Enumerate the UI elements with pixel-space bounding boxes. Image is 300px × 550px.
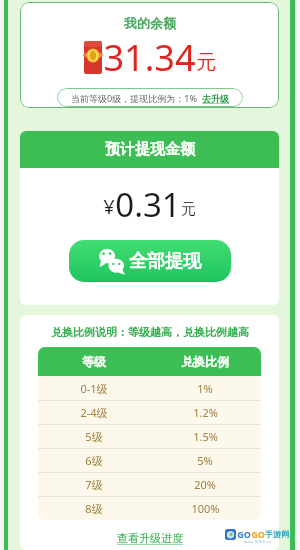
staticText: 去升级 xyxy=(202,93,229,104)
staticText: 2-4级 xyxy=(80,405,108,420)
button[interactable]: 当前等级0级，提现比例为：1% xyxy=(57,88,243,107)
staticText: GO xyxy=(251,528,265,540)
staticText: 手游网 xyxy=(265,529,289,539)
staticText: 0.31 xyxy=(115,182,181,227)
staticText: 8级 xyxy=(85,501,103,516)
staticText: 5级 xyxy=(85,429,103,444)
staticText: 元 xyxy=(196,50,216,75)
button[interactable]: 查看升级进度 xyxy=(113,529,187,547)
staticText: 1% xyxy=(197,381,213,396)
staticText: w w w . 6 0 6 0 . c n xyxy=(244,540,271,544)
staticText: 5% xyxy=(197,453,213,468)
staticText: 6级 xyxy=(85,453,103,468)
staticText: ¥ xyxy=(103,193,115,220)
staticText: 兑换比例 xyxy=(181,354,229,369)
staticText: 7级 xyxy=(85,477,103,492)
staticText: 兑换比例说明：等级越高，兑换比例越高 xyxy=(51,325,249,339)
staticText: 等级 xyxy=(82,354,106,369)
staticText: 我的余额 xyxy=(124,15,176,31)
staticText: 全部提现 xyxy=(129,250,201,273)
staticText: 查看升级进度 xyxy=(117,531,183,545)
staticText: 100% xyxy=(191,501,220,516)
staticText: 元 xyxy=(181,200,196,219)
staticText: 0-1级 xyxy=(80,381,108,396)
staticText: GO xyxy=(237,528,251,540)
staticText: 31.34 xyxy=(103,33,196,82)
staticText: 当前等级0级，提现比例为：1% xyxy=(71,92,197,104)
staticText: 1.2% xyxy=(193,405,218,420)
button[interactable]: 全部提现 xyxy=(69,240,231,282)
staticText: 预计提现金额 xyxy=(105,140,195,159)
staticText: 1.5% xyxy=(193,429,218,444)
staticText: 20% xyxy=(194,477,216,492)
